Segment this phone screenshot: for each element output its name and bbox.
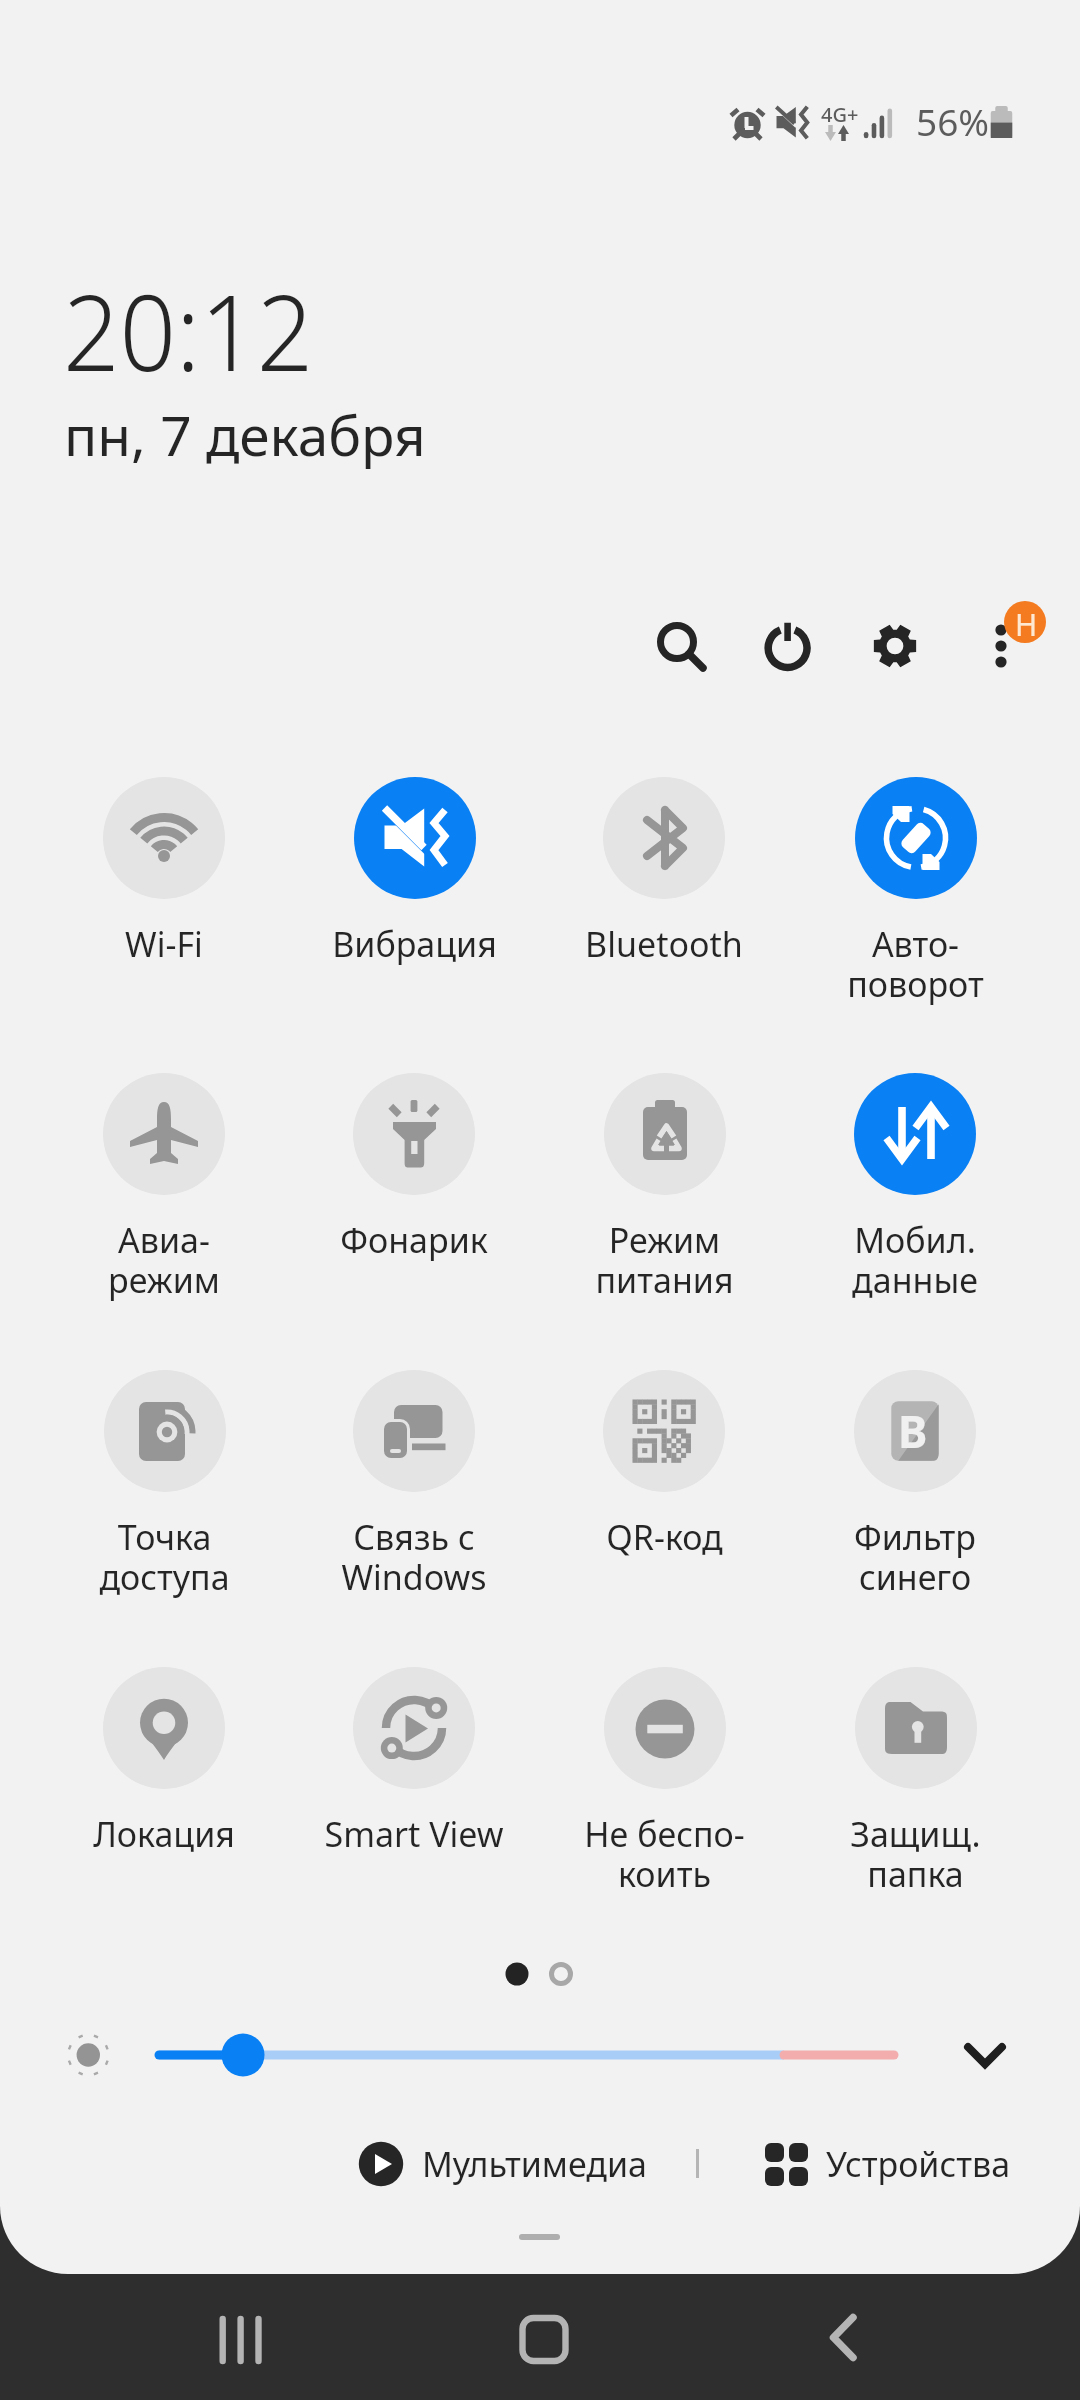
button[interactable]: Режим питания xyxy=(552,1073,776,1303)
button[interactable]: Мультимедиа xyxy=(355,2135,647,2193)
button[interactable]: QR-код xyxy=(552,1370,776,1600)
staticText: Smart View xyxy=(324,1811,504,1857)
button[interactable]: Search xyxy=(633,600,721,688)
button[interactable]: Back xyxy=(784,2274,904,2400)
staticText: Авиа- режим xyxy=(108,1217,220,1303)
button[interactable]: Мобил. данные xyxy=(803,1073,1027,1303)
staticText: Устройства xyxy=(826,2141,1011,2187)
button[interactable]: Связь с Windows xyxy=(302,1370,526,1600)
button[interactable]: Smart View xyxy=(302,1667,526,1897)
staticText: Не беспо- коить xyxy=(584,1811,745,1897)
staticText: Фильтр синего xyxy=(854,1514,976,1600)
button[interactable]: Home xyxy=(482,2274,602,2400)
staticText: пн, 7 декабря xyxy=(64,397,426,472)
staticText: Связь с Windows xyxy=(341,1514,487,1600)
button[interactable]: Recent apps xyxy=(180,2274,300,2400)
button[interactable]: More options xyxy=(958,586,1058,686)
button[interactable]: Settings xyxy=(851,600,939,688)
staticText: 56% xyxy=(916,96,990,146)
staticText: Мобил. данные xyxy=(852,1217,978,1303)
staticText: Точка доступа xyxy=(99,1514,230,1600)
button[interactable]: Bluetooth xyxy=(552,777,776,1007)
staticText: Wi-Fi xyxy=(125,921,203,967)
staticText: Защищ. папка xyxy=(850,1811,981,1897)
staticText: Bluetooth xyxy=(585,921,743,967)
button[interactable]: Авто- поворот xyxy=(803,777,1027,1007)
button[interactable]: Локация xyxy=(52,1667,276,1897)
staticText: В xyxy=(898,1401,928,1461)
staticText: 4G+ xyxy=(821,101,859,128)
staticText: Вибрация xyxy=(332,921,497,967)
staticText: 20:12 xyxy=(63,260,313,402)
button[interactable]: Power off xyxy=(744,600,832,688)
button[interactable]: Не беспо- коить xyxy=(552,1667,776,1897)
staticText: Мультимедиа xyxy=(422,2141,647,2187)
staticText: Авто- поворот xyxy=(847,921,984,1007)
staticText: QR-код xyxy=(606,1514,723,1560)
button[interactable]: Вибрация xyxy=(302,777,526,1007)
button[interactable]: Точка доступа xyxy=(52,1370,276,1600)
button[interactable]: Wi-Fi xyxy=(52,777,276,1007)
button[interactable]: Устройства xyxy=(760,2135,1011,2193)
staticText: Локация xyxy=(93,1811,235,1857)
staticText: Режим питания xyxy=(595,1217,734,1303)
button[interactable]: В xyxy=(803,1370,1027,1600)
button[interactable]: Фонарик xyxy=(302,1073,526,1303)
button[interactable]: Защищ. папка xyxy=(803,1667,1027,1897)
button[interactable]: Авиа- режим xyxy=(52,1073,276,1303)
staticText: H xyxy=(1015,604,1038,645)
staticText: Фонарик xyxy=(340,1217,488,1263)
